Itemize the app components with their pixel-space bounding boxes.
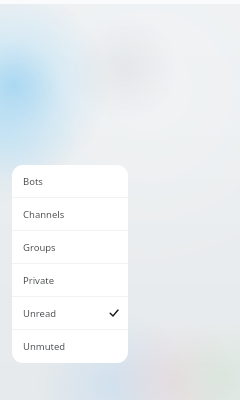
staticText: Bots [23,175,43,188]
button[interactable]: Channels [12,198,128,230]
button[interactable]: Unmuted [12,330,128,362]
other: Selected [109,308,119,318]
button[interactable]: Groups [12,231,128,263]
button[interactable]: Bots [12,165,128,197]
staticText: Channels [23,208,65,221]
staticText: Private [23,274,55,287]
button[interactable]: Private [12,264,128,296]
staticText: Unmuted [23,340,66,353]
button[interactable]: Unread [12,297,128,329]
staticText: Unread [23,307,57,320]
staticText: Groups [23,241,56,254]
